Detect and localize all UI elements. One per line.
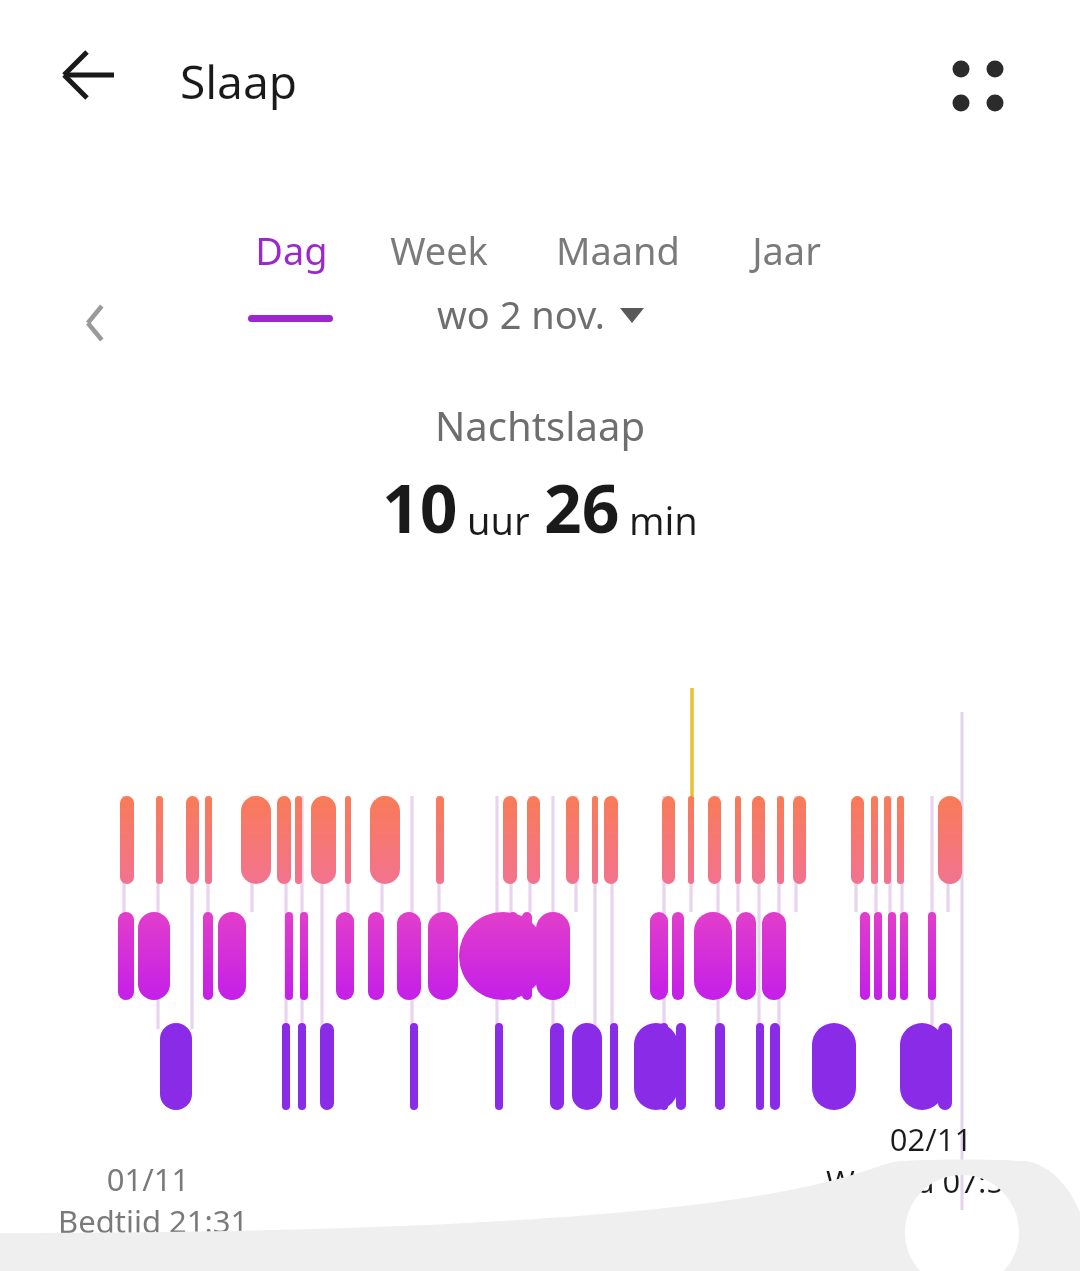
staticText: Dag <box>255 224 328 276</box>
button[interactable]: Maand <box>528 224 708 308</box>
button[interactable]: Terug <box>56 43 120 107</box>
staticText: min <box>629 494 698 546</box>
staticText: Week <box>390 224 488 276</box>
staticText: Maand <box>556 224 680 276</box>
staticText: 26 <box>544 462 620 552</box>
staticText: Slaap <box>180 50 298 113</box>
button[interactable]: Vorige dag <box>64 290 130 356</box>
staticText: Bedtijd 21:31 <box>58 1200 249 1242</box>
button[interactable]: wo 2 nov. <box>437 288 644 340</box>
staticText: wo 2 nov. <box>437 288 606 340</box>
staticText: 10 <box>382 462 458 552</box>
button[interactable]: Dag <box>234 224 348 308</box>
staticText: 01/11 <box>58 1158 238 1200</box>
staticText: 02/11 <box>840 1118 1022 1160</box>
staticText: Nachtslaap <box>0 398 1080 452</box>
button[interactable]: Week <box>363 224 514 308</box>
button[interactable]: Jaar <box>727 224 845 308</box>
staticText: uur <box>467 494 530 546</box>
staticText: Wektijd 07:58 <box>826 1160 1022 1202</box>
staticText: Jaar <box>752 224 821 276</box>
button[interactable]: Toevoegen <box>905 1153 1019 1267</box>
button[interactable]: Meer opties <box>928 38 1028 134</box>
